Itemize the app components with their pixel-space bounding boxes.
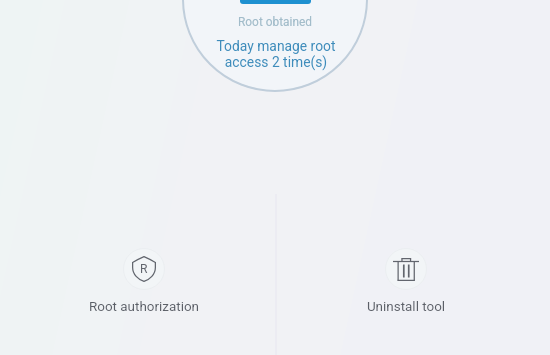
staticText: Today manage root access 2 time(s) [176,38,376,70]
staticText: Root authorization [74,299,214,315]
button[interactable]: Uninstall tool [336,236,476,326]
staticText: R [140,262,148,276]
staticText: Uninstall tool [336,299,476,315]
staticText: Root obtained [165,15,385,29]
button[interactable]: Root authorization [74,236,214,326]
other: Uninstall tool [393,258,419,281]
other: Root authorization [132,256,156,282]
button[interactable] [240,0,311,4]
